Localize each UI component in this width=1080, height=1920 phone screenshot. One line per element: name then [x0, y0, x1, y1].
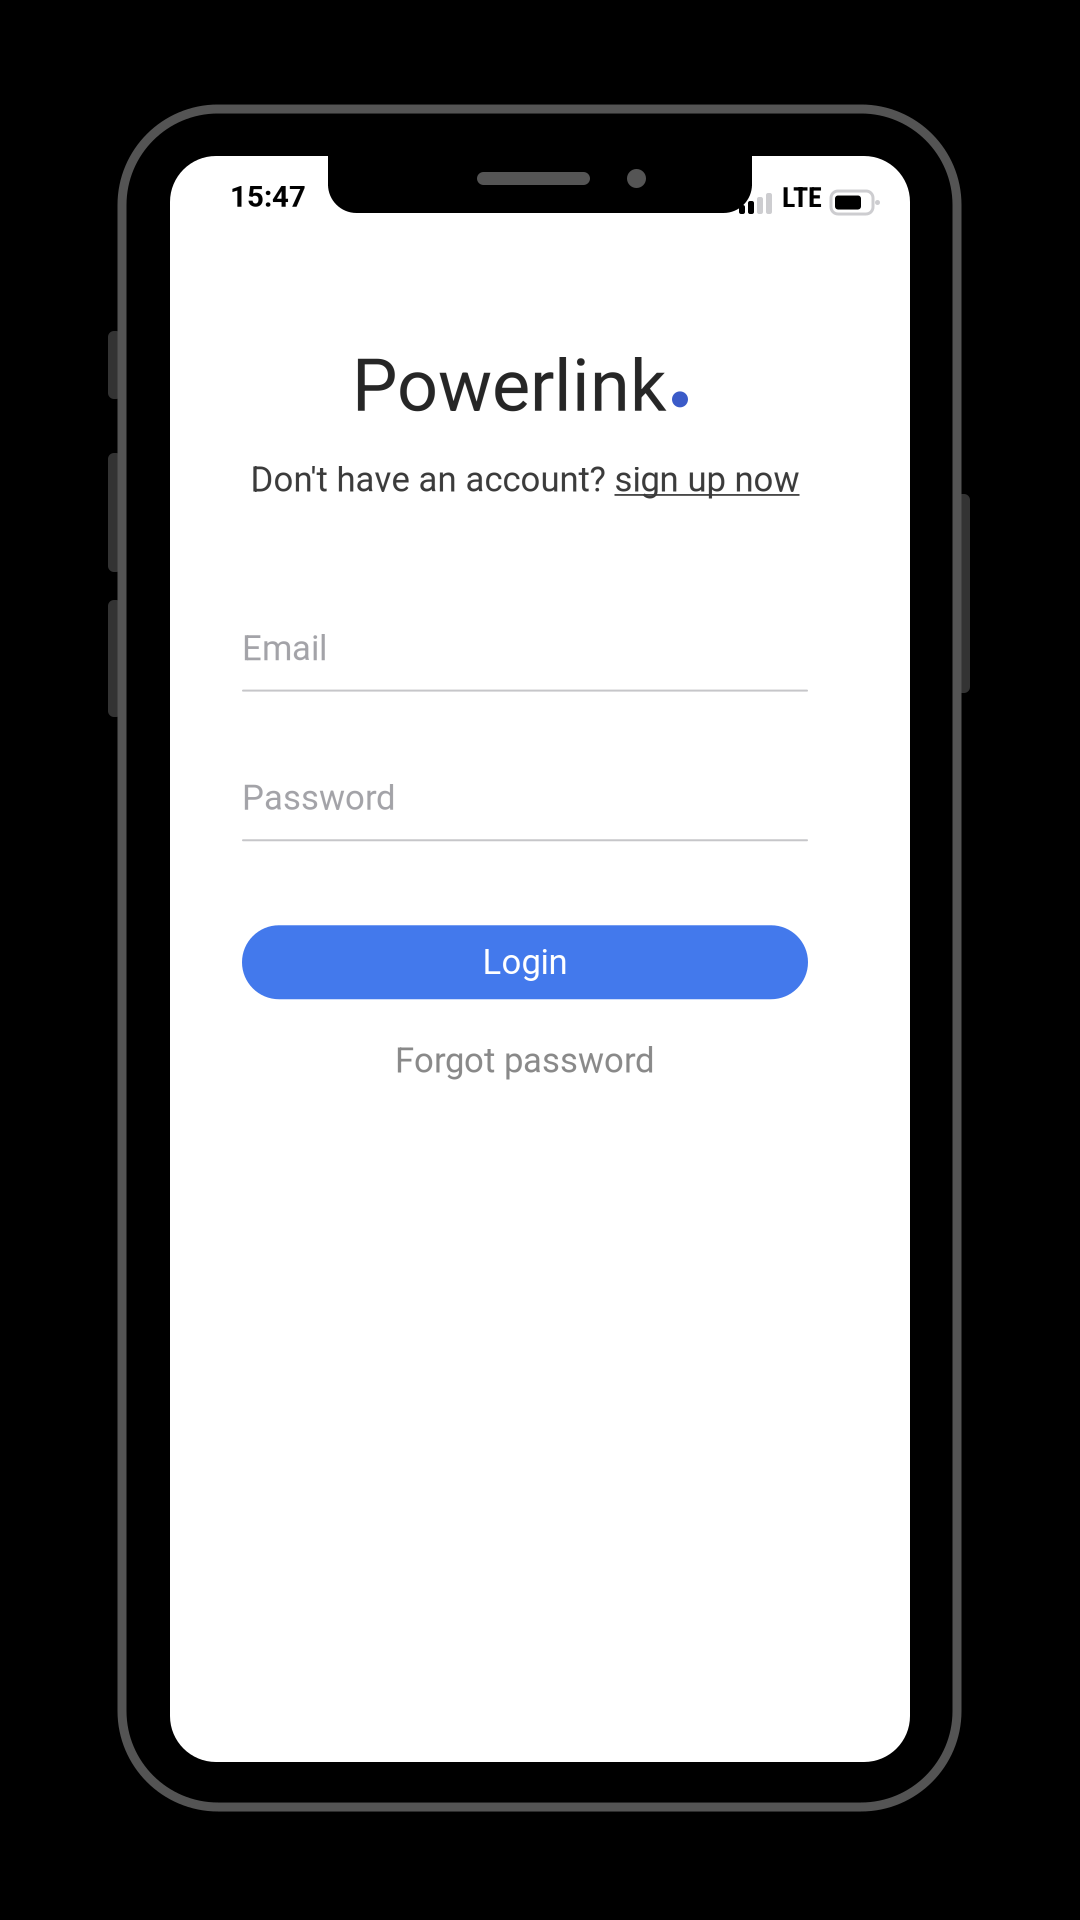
staticText: Powerlink	[352, 344, 666, 428]
button[interactable]: Forgot password	[371, 1030, 679, 1091]
staticText: Password	[242, 778, 396, 818]
staticText: 15:47	[230, 180, 306, 214]
button[interactable]: sign up now	[614, 459, 799, 500]
button[interactable]: Password	[242, 778, 808, 841]
staticText: Don't have an account?	[250, 459, 614, 500]
button[interactable]: Login	[242, 925, 808, 999]
staticText: Login	[482, 942, 567, 982]
button[interactable]: Email	[242, 628, 808, 692]
staticText: Forgot password	[395, 1040, 655, 1081]
staticText: sign up now	[614, 459, 799, 500]
staticText: Email	[242, 628, 327, 669]
staticText: LTE	[782, 181, 822, 214]
